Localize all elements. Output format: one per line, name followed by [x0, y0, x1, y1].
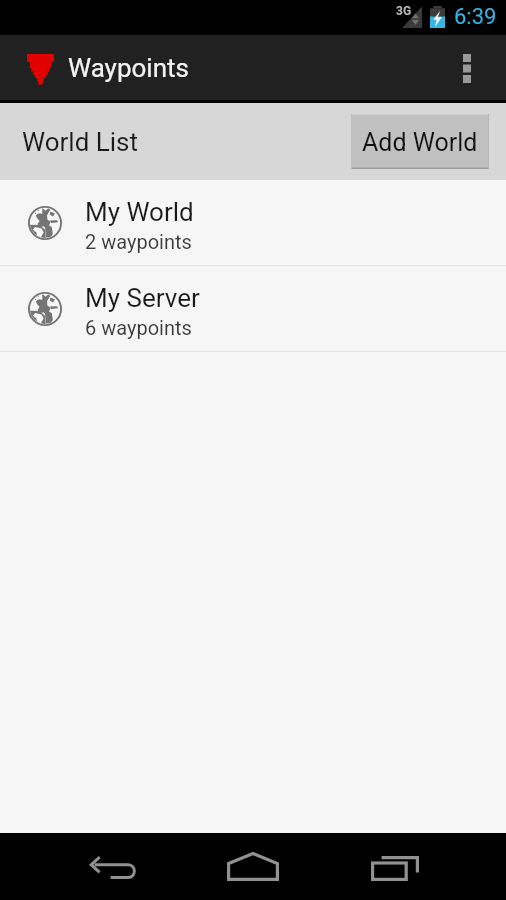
button[interactable]: Add World: [351, 114, 489, 169]
staticText: 6 waypoints: [85, 316, 192, 339]
button[interactable]: More options: [438, 35, 496, 100]
button[interactable]: Recent apps: [326, 833, 464, 900]
button[interactable]: Home: [184, 833, 322, 900]
staticText: 3G: [396, 4, 412, 18]
staticText: My World: [85, 197, 194, 227]
staticText: World List: [22, 127, 138, 157]
staticText: 6:39: [454, 4, 497, 30]
staticText: 2 waypoints: [85, 230, 192, 253]
button[interactable]: My Server: [0, 266, 506, 351]
button[interactable]: Back: [44, 833, 182, 900]
button[interactable]: My World: [0, 180, 506, 265]
staticText: My Server: [85, 283, 200, 313]
staticText: Add World: [362, 128, 478, 157]
staticText: Waypoints: [68, 53, 189, 83]
